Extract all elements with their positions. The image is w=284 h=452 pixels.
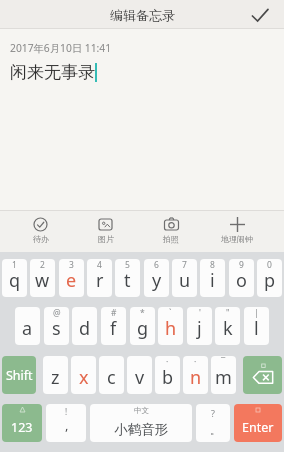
button[interactable]: | <box>244 307 269 345</box>
staticText: b <box>162 365 174 390</box>
button[interactable]: 待办 <box>8 211 73 252</box>
button[interactable]: * <box>130 307 155 345</box>
button[interactable]: ? <box>196 404 230 442</box>
staticText: a <box>22 316 33 341</box>
staticText: s <box>52 316 61 341</box>
button[interactable]: ¯ <box>211 356 236 394</box>
staticText: ? <box>211 407 215 419</box>
staticText: c <box>107 365 116 390</box>
button[interactable]: · <box>183 356 208 394</box>
staticText: d <box>79 316 91 341</box>
button[interactable]: " <box>215 307 240 345</box>
button[interactable]: 0 <box>257 259 282 297</box>
button[interactable]: 中文 <box>90 404 192 442</box>
staticText: · <box>166 356 169 368</box>
staticText: 5 <box>125 259 130 271</box>
staticText: h <box>165 316 177 341</box>
button[interactable] <box>243 356 282 394</box>
button[interactable]: 图片 <box>73 211 138 252</box>
staticText: 闲来无事录 <box>10 62 95 83</box>
staticText: y <box>152 268 162 293</box>
staticText: n <box>190 365 202 390</box>
staticText: 2017年6月10日 11:41 <box>10 41 112 55</box>
button[interactable]: 拍照 <box>138 211 204 252</box>
staticText: 待办 <box>33 234 49 244</box>
staticText: t <box>124 268 131 293</box>
staticText: f <box>110 316 117 341</box>
staticText: 0 <box>267 259 272 271</box>
button[interactable]: ' <box>187 307 212 345</box>
staticText: 拍照 <box>163 234 179 244</box>
staticText: · <box>194 356 197 368</box>
staticText: 编辑备忘录 <box>110 7 175 23</box>
staticText: * <box>140 307 145 319</box>
staticText: 中文 <box>134 406 149 415</box>
staticText: Enter <box>242 419 274 436</box>
staticText: k <box>223 316 233 341</box>
button[interactable]: 地理闹钟 <box>204 211 270 252</box>
button[interactable]: 4 <box>87 259 112 297</box>
button[interactable]: ` <box>158 307 183 345</box>
staticText: e <box>66 268 77 293</box>
staticText: m <box>215 365 232 390</box>
staticText: o <box>236 268 247 293</box>
staticText: g <box>137 316 149 341</box>
button[interactable]: 1 <box>2 259 27 297</box>
staticText: , <box>65 416 69 434</box>
staticText: ` <box>169 307 172 319</box>
button[interactable]: 5 <box>115 259 140 297</box>
staticText: w <box>35 268 50 293</box>
button[interactable]: 2 <box>30 259 55 297</box>
staticText: 。 <box>210 424 220 437</box>
staticText: 6 <box>154 259 159 271</box>
staticText: ' <box>199 307 201 319</box>
button[interactable]: · <box>155 356 180 394</box>
staticText: 2 <box>40 259 45 271</box>
button[interactable]: x <box>71 356 96 394</box>
button[interactable]: c <box>99 356 124 394</box>
staticText: ! <box>65 406 68 417</box>
button[interactable]: 8 <box>200 259 225 297</box>
staticText: @ <box>53 307 61 319</box>
staticText: u <box>179 268 191 293</box>
staticText: 9 <box>239 259 244 271</box>
staticText: x <box>79 365 89 390</box>
staticText: 小鹤音形 <box>114 421 168 438</box>
staticText: 4 <box>97 259 102 271</box>
button[interactable]: 7 <box>172 259 197 297</box>
staticText: # <box>111 307 117 319</box>
button[interactable] <box>250 5 270 25</box>
staticText: 7 <box>182 259 187 271</box>
button[interactable]: 9 <box>229 259 254 297</box>
staticText: 图片 <box>98 234 114 244</box>
staticText: r <box>96 268 104 293</box>
button[interactable]: 6 <box>144 259 169 297</box>
staticText: 3 <box>69 259 74 271</box>
button[interactable]: Enter <box>234 404 282 442</box>
staticText: l <box>254 316 259 341</box>
button[interactable]: 123 <box>2 404 42 442</box>
button[interactable]: a <box>15 307 40 345</box>
staticText: 地理闹钟 <box>221 234 253 244</box>
staticText: q <box>9 268 21 293</box>
button[interactable]: v <box>127 356 152 394</box>
staticText: v <box>135 365 145 390</box>
button[interactable]: Shift <box>2 356 36 394</box>
staticText: j <box>197 316 202 341</box>
button[interactable]: # <box>101 307 126 345</box>
staticText: 8 <box>210 259 215 271</box>
button[interactable]: @ <box>44 307 69 345</box>
staticText: Shift <box>6 367 33 384</box>
staticText: ¯ <box>221 356 226 368</box>
button[interactable]: 3 <box>59 259 84 297</box>
staticText: " <box>226 307 230 319</box>
button[interactable]: z <box>43 356 68 394</box>
staticText: i <box>210 268 215 293</box>
button[interactable]: ! <box>46 404 86 442</box>
staticText: 1 <box>12 259 17 271</box>
staticText: | <box>254 307 259 319</box>
staticText: 123 <box>11 419 33 436</box>
staticText: p <box>264 268 276 293</box>
staticText: z <box>51 365 60 390</box>
button[interactable]: d <box>72 307 97 345</box>
